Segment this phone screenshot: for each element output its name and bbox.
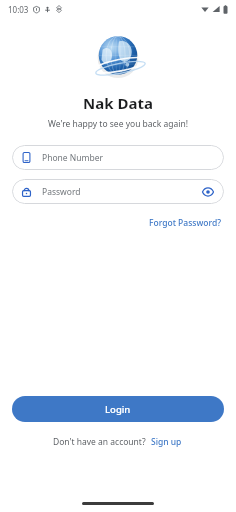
staticText: Sign up — [151, 436, 182, 448]
button[interactable]: Password — [12, 179, 224, 204]
button[interactable]: Show password — [201, 185, 215, 199]
staticText: Nak Data — [0, 93, 236, 113]
staticText: Password — [42, 186, 81, 198]
staticText: Phone Number — [42, 152, 103, 164]
button[interactable]: Phone Number — [12, 145, 224, 170]
staticText: Forgot Password? — [149, 217, 221, 229]
staticText: We're happy to see you back again! — [0, 118, 236, 130]
staticText: 10:03 — [8, 4, 29, 15]
button[interactable]: Login — [12, 396, 224, 422]
button[interactable]: Sign up — [149, 434, 184, 450]
button[interactable]: Forgot Password? — [146, 214, 224, 232]
staticText: Login — [105, 403, 131, 416]
staticText: Don't have an account? — [53, 436, 146, 448]
